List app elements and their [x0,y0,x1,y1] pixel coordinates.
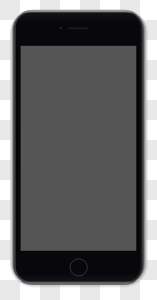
other: Phone device mockup [0,0,157,300]
